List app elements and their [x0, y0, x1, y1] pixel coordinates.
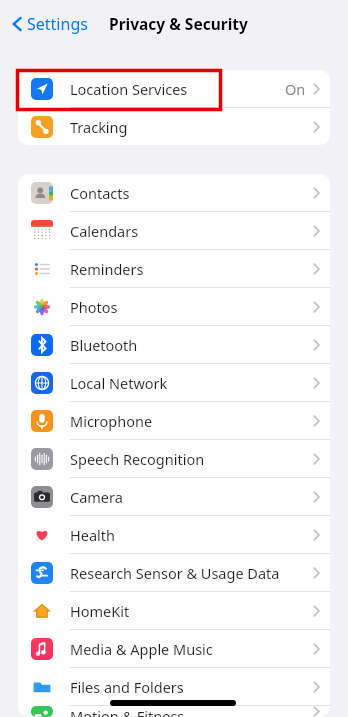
other: Research Sensor and Usage Data [31, 562, 53, 584]
staticText: On [285, 79, 306, 99]
other: Media and Apple Music [31, 638, 53, 660]
other: Local Network [31, 372, 53, 394]
button[interactable]: HomeKit [18, 592, 330, 629]
button[interactable]: Motion and Fitness [18, 706, 330, 717]
other: Photos [31, 296, 53, 318]
staticText: Calendars [70, 221, 313, 241]
staticText: Speech Recognition [70, 449, 313, 469]
other: Bluetooth [31, 334, 53, 356]
staticText: Privacy & Security [109, 13, 248, 34]
staticText: Media & Apple Music [70, 639, 313, 659]
staticText: Location Services [70, 79, 285, 99]
button[interactable]: Local Network [18, 364, 330, 401]
other: Health [31, 524, 53, 546]
other: Motion and Fitness [31, 706, 53, 717]
button[interactable]: Media and Apple Music [18, 630, 330, 667]
other: Location Services [31, 78, 53, 100]
button[interactable]: Location Services [18, 70, 330, 107]
button[interactable]: Camera [18, 478, 330, 515]
staticText: Files and Folders [70, 677, 313, 697]
button[interactable]: Speech Recognition [18, 440, 330, 477]
other: Reminders [31, 258, 53, 280]
button[interactable]: Contacts [18, 174, 330, 211]
other: HomeKit [31, 600, 53, 622]
staticText: Microphone [70, 411, 313, 431]
button[interactable]: Reminders [18, 250, 330, 287]
other: Files and Folders [31, 676, 53, 698]
staticText: HomeKit [70, 601, 313, 621]
button[interactable]: Microphone [18, 402, 330, 439]
staticText: Contacts [70, 183, 313, 203]
button[interactable]: Photos [18, 288, 330, 325]
staticText: Local Network [70, 373, 313, 393]
button[interactable]: Calendars [18, 212, 330, 249]
button[interactable]: Research Sensor and Usage Data [18, 554, 330, 591]
staticText: Settings [27, 13, 88, 35]
button[interactable]: Bluetooth [18, 326, 330, 363]
staticText: Bluetooth [70, 335, 313, 355]
button[interactable]: Files and Folders [18, 668, 330, 705]
button[interactable]: Tracking [18, 108, 330, 145]
staticText: Health [70, 525, 313, 545]
staticText: Tracking [70, 117, 313, 137]
staticText: Reminders [70, 259, 313, 279]
other: Microphone [31, 410, 53, 432]
other: Camera [31, 486, 53, 508]
other: Calendars [31, 220, 53, 242]
staticText: Research Sensor & Usage Data [70, 563, 313, 583]
other: Tracking [31, 116, 53, 138]
button[interactable]: Health [18, 516, 330, 553]
staticText: Photos [70, 297, 313, 317]
button[interactable]: Settings [8, 9, 92, 39]
other: Contacts [31, 182, 53, 204]
staticText: Motion & Fitness [70, 706, 313, 717]
other: Speech Recognition [31, 448, 53, 470]
staticText: Camera [70, 487, 313, 507]
